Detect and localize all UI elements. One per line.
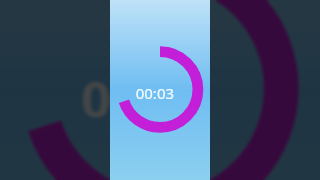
button[interactable]: Countdown timer [0,0,320,180]
